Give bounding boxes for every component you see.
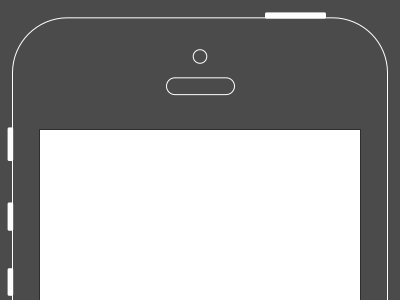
button[interactable]: Volume up bbox=[8, 202, 13, 231]
button[interactable]: Ring Silent switch bbox=[8, 127, 13, 161]
button[interactable]: Sleep Wake button bbox=[265, 12, 326, 19]
button[interactable]: Volume down bbox=[8, 268, 13, 296]
